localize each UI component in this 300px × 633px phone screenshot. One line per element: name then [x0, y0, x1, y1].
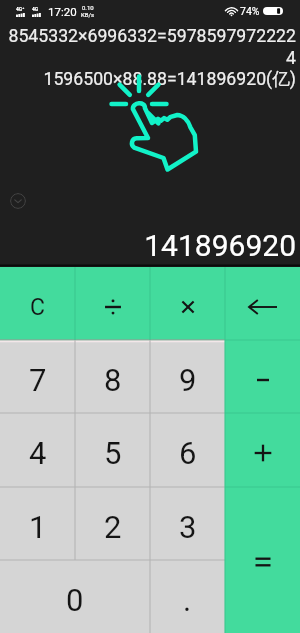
button[interactable]: 4 — [0, 413, 75, 487]
button[interactable]: Multiply — [150, 267, 225, 340]
staticText: 8545332×6996332=59785979722224 — [8, 26, 296, 68]
button[interactable]: Minus — [225, 340, 300, 413]
button[interactable]: Show calculation history — [10, 193, 26, 209]
staticText: 74% — [240, 5, 260, 17]
button[interactable]: 2 — [75, 487, 150, 560]
button[interactable]: 8 — [75, 340, 150, 413]
staticText: . — [183, 582, 192, 618]
staticText: 4G⁺ — [16, 6, 25, 12]
staticText: 4 — [29, 435, 47, 471]
button[interactable]: 9 — [150, 340, 225, 413]
button[interactable]: 7 — [0, 340, 75, 413]
staticText: C — [30, 294, 45, 321]
staticText: 141896920 — [0, 228, 296, 263]
staticText: 3 — [179, 509, 197, 545]
button[interactable]: Divide — [75, 267, 150, 340]
staticText: KB/s — [81, 11, 95, 18]
staticText: 8 — [104, 362, 122, 398]
button[interactable]: 0 — [0, 560, 150, 633]
button[interactable]: Backspace — [225, 267, 300, 340]
button[interactable]: C — [0, 267, 75, 340]
button[interactable]: 6 — [150, 413, 225, 487]
staticText: 9 — [179, 362, 197, 398]
button[interactable]: . — [150, 560, 225, 633]
staticText: 0 — [66, 582, 84, 618]
staticText: 1596500×88.88=141896920(亿) — [8, 68, 296, 90]
button[interactable]: 3 — [150, 487, 225, 560]
staticText: 17:20 — [48, 5, 77, 18]
button[interactable]: 1 — [0, 487, 75, 560]
staticText: 2 — [104, 509, 122, 545]
button[interactable]: Plus — [225, 413, 300, 487]
staticText: 4G — [32, 6, 39, 12]
staticText: 5 — [104, 435, 122, 471]
staticText: 7 — [29, 362, 47, 398]
staticText: 1 — [29, 509, 47, 545]
button[interactable]: 5 — [75, 413, 150, 487]
button[interactable]: Equals — [225, 487, 300, 633]
staticText: 0.10 — [82, 4, 94, 11]
staticText: 6 — [179, 435, 197, 471]
